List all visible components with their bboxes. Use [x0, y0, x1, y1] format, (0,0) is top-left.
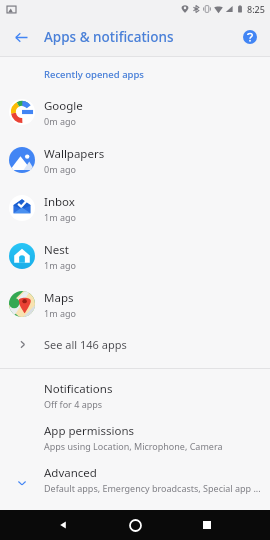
button[interactable]: Inbox: [0, 184, 270, 232]
button[interactable]: Advanced: [0, 465, 270, 494]
staticText: 1m ago: [44, 259, 76, 271]
staticText: 0m ago: [44, 163, 76, 175]
staticText: See all 146 apps: [44, 337, 127, 352]
staticText: 8:25: [247, 3, 265, 15]
button[interactable]: Wallpapers: [0, 136, 270, 184]
staticText: Default apps, Emergency broadcasts, Spec…: [44, 482, 261, 494]
staticText: Nest: [44, 242, 69, 258]
staticText: Maps: [44, 290, 74, 306]
button[interactable]: See all 146 apps: [0, 328, 270, 361]
button[interactable]: Maps: [0, 280, 270, 328]
staticText: Inbox: [44, 194, 75, 210]
staticText: 0m ago: [44, 115, 76, 127]
staticText: 1m ago: [44, 307, 76, 319]
staticText: Wallpapers: [44, 146, 105, 162]
staticText: Apps using Location, Microphone, Camera: [44, 440, 223, 452]
staticText: Notifications: [44, 381, 113, 397]
button[interactable]: Back: [50, 512, 76, 538]
staticText: Google: [44, 98, 83, 114]
staticText: Recently opened apps: [44, 68, 144, 81]
button[interactable]: Nest: [0, 232, 270, 280]
staticText: Advanced: [44, 465, 97, 481]
staticText: App permissions: [44, 423, 135, 439]
button[interactable]: Back: [6, 22, 36, 52]
button[interactable]: Help: [237, 24, 263, 50]
button[interactable]: Recent apps: [194, 512, 220, 538]
button[interactable]: Google: [0, 88, 270, 136]
staticText: 1m ago: [44, 211, 76, 223]
button[interactable]: Home: [122, 512, 148, 538]
staticText: Apps & notifications: [44, 28, 174, 46]
button[interactable]: App permissions: [0, 423, 270, 452]
button[interactable]: Notifications: [0, 381, 270, 410]
staticText: Off for 4 apps: [44, 398, 103, 410]
